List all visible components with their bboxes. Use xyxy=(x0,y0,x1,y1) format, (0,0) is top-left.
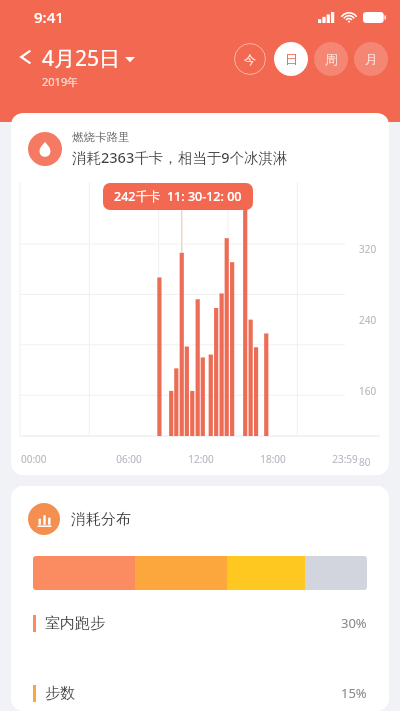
staticText: 240 xyxy=(359,313,389,327)
button[interactable]: 日 xyxy=(274,42,308,76)
staticText: 15% xyxy=(341,684,367,702)
button[interactable]: 消耗分布 xyxy=(11,486,389,711)
staticText: 月 xyxy=(365,51,378,67)
button[interactable]: 月 xyxy=(354,42,388,76)
staticText: 242千卡 11: 30-12: 00 xyxy=(114,188,242,205)
staticText: 00:00 xyxy=(21,452,93,466)
staticText: 周 xyxy=(325,51,338,67)
staticText: 日 xyxy=(285,51,298,67)
staticText: 2019年 xyxy=(42,74,79,89)
staticText: 30% xyxy=(341,614,367,632)
staticText: 160 xyxy=(359,384,389,398)
button[interactable]: 步数 xyxy=(33,681,367,705)
staticText: 消耗分布 xyxy=(71,510,131,529)
staticText: 320 xyxy=(359,242,389,256)
button[interactable]: 4月25日 xyxy=(16,44,136,89)
button[interactable]: 今 xyxy=(234,43,266,75)
staticText: 06:00 xyxy=(93,452,165,466)
staticText: 步数 xyxy=(45,684,75,703)
staticText: 9:41 xyxy=(34,7,64,27)
staticText: 23:59 xyxy=(309,452,381,466)
staticText: 燃烧卡路里 xyxy=(72,130,130,144)
staticText: 12:00 xyxy=(165,452,237,466)
staticText: 今 xyxy=(244,52,256,67)
button[interactable]: 室内跑步 xyxy=(33,611,367,635)
staticText: 室内跑步 xyxy=(45,614,105,633)
button[interactable]: 燃烧卡路里 xyxy=(11,113,389,475)
staticText: 80 xyxy=(359,455,389,469)
staticText: 消耗2363千卡，相当于9个冰淇淋 xyxy=(72,147,288,167)
button[interactable]: 周 xyxy=(314,42,348,76)
staticText: 4月25日 xyxy=(42,44,121,73)
staticText: 18:00 xyxy=(237,452,309,466)
